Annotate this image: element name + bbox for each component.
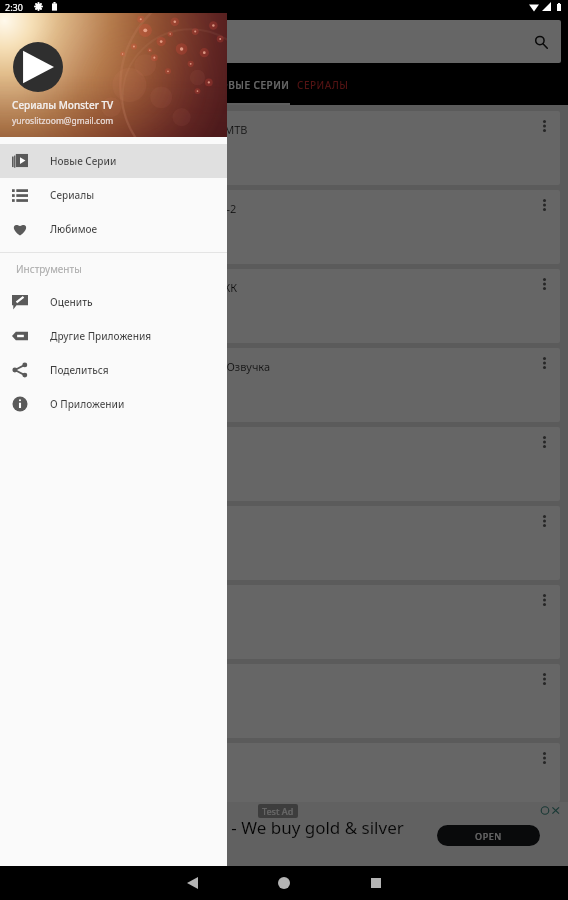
button[interactable]: Флэш 6 сезон 12 серия (Озвучка) ТВ-3ЖК	[8, 269, 560, 343]
button[interactable]: More options	[530, 191, 558, 219]
button[interactable]: Поделиться	[0, 353, 227, 387]
staticText: SF Bay Area Gold Diamonds - We buy gold …	[6, 816, 404, 839]
button[interactable]: НОВЫЕ СЕРИИ	[212, 64, 290, 105]
staticText: Инструменты	[16, 262, 82, 276]
staticText: О Приложении	[50, 397, 125, 411]
staticText: Сверхъестественное 15 сезон 11 серия-2	[19, 201, 237, 216]
other: Ad choices	[540, 806, 560, 815]
button[interactable]: Мандалорец 1 сезон 8 серия	[8, 585, 560, 659]
button[interactable]: Острые козырьки 5 сезон 6	[8, 743, 560, 802]
button[interactable]: Сверхъестественное 15 сезон 11 серия-2	[8, 190, 560, 264]
button[interactable]: More options	[530, 665, 558, 693]
button[interactable]: Search	[8, 20, 561, 63]
button[interactable]: Новый Амстердам 2 сезон 11	[8, 427, 560, 501]
button[interactable]: СЕРИАЛЫ	[290, 64, 356, 105]
button[interactable]: More options	[530, 744, 558, 772]
button[interactable]: More options	[530, 586, 558, 614]
staticText: Бегущий в лабиринте 1 сезон 1 серия (Озв…	[19, 359, 271, 374]
button[interactable]: Хороший доктор 3 сезон 12	[8, 506, 560, 580]
button[interactable]: More options	[530, 349, 558, 377]
staticText: Сериалы	[50, 188, 95, 202]
staticText: Оценить	[50, 295, 93, 309]
button[interactable]: Profile	[13, 42, 63, 92]
button[interactable]: О Приложении	[0, 387, 227, 421]
button[interactable]: Ривердэйл 4 сезон 12 серия (Озвучка) МТВ	[8, 111, 560, 185]
button[interactable]: Ведьмак 1 сезон 8 серия	[8, 664, 560, 738]
staticText: Флэш 6 сезон 12 серия (Озвучка) ТВ-3ЖК	[19, 280, 238, 295]
button[interactable]: Back	[146, 866, 238, 900]
staticText: НОВЫЕ СЕРИИ	[212, 78, 290, 92]
button[interactable]: Оценить	[0, 285, 227, 319]
button[interactable]: Другие Приложения	[0, 319, 227, 353]
staticText: Любимое	[50, 222, 98, 236]
button[interactable]: More options	[530, 270, 558, 298]
button[interactable]: Сериалы	[0, 178, 227, 212]
staticText: Test Ad	[262, 805, 294, 817]
staticText: Сериал добавлен 22.01.2020 (1080p) HDR	[19, 375, 219, 389]
button[interactable]: More options	[530, 112, 558, 140]
other: Search	[534, 35, 548, 49]
button[interactable]: Бегущий в лабиринте 1 сезон 1 серия (Озв…	[8, 348, 560, 422]
staticText: Другие Приложения	[50, 329, 152, 343]
button[interactable]: Любимое	[0, 212, 227, 246]
staticText: yuroslitzoom@gmail.com	[12, 115, 114, 127]
staticText: Ривердэйл 4 сезон 12 серия (Озвучка) МТВ	[19, 122, 248, 137]
button[interactable]: OPEN	[437, 825, 540, 846]
staticText: Новые Серии	[50, 154, 117, 168]
staticText: Поделиться	[50, 363, 109, 377]
button[interactable]: Home	[238, 866, 330, 900]
staticText: СЕРИАЛЫ	[297, 78, 349, 92]
button[interactable]: Recent apps	[330, 866, 422, 900]
staticText: Сериалы Monster TV	[12, 98, 114, 112]
button[interactable]: More options	[530, 428, 558, 456]
staticText: 2:30	[5, 1, 23, 13]
staticText: OPEN	[475, 830, 502, 842]
button[interactable]: More options	[530, 507, 558, 535]
button[interactable]: Новые Серии	[0, 144, 227, 178]
